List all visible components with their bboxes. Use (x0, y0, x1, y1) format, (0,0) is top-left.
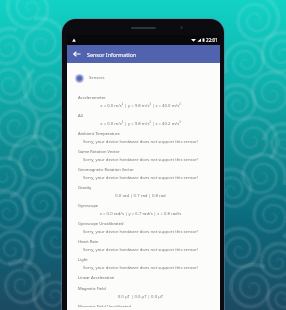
staticText: Game Rotation Vector (78, 149, 120, 155)
button[interactable]: Game Rotation Vector (67, 147, 220, 165)
staticText: Sorry, your device hardware does not sup… (78, 228, 203, 234)
staticText: x = 0.0 m/s² | y = 9.8 m/s² | z = 40.2 m… (78, 120, 203, 126)
staticText: Sorry, your device hardware does not sup… (78, 174, 203, 180)
staticText: x = 0.0 rad/s | y = 6.7 rad/s | z = 0.8 … (78, 210, 203, 216)
staticText: Linear Acceleration (78, 275, 115, 281)
staticText: Sensors (89, 75, 105, 81)
staticText: 0.0 rad | 0.7 rad | 0.8 rad (78, 192, 203, 198)
staticText: Sorry, your device hardware does not sup… (78, 138, 203, 144)
staticText: Heart Rate (78, 239, 99, 245)
staticText: Ambient Temperature (78, 131, 120, 137)
button[interactable]: Linear Acceleration (67, 273, 220, 284)
staticText: Gravity (78, 185, 92, 191)
staticText: Geomagnetic Rotation Vector (78, 167, 134, 173)
button[interactable]: Gravity (67, 183, 220, 201)
staticText: Gyroscope Uncalibrated (78, 221, 124, 227)
staticText: Gyroscope (78, 203, 99, 209)
button[interactable]: Sensors (75, 63, 220, 93)
staticText: Sorry, your device hardware does not sup… (78, 156, 203, 162)
button[interactable]: Light (67, 255, 220, 273)
button[interactable]: Gyroscope Uncalibrated (67, 219, 220, 237)
staticText: Sorry, your device hardware does not sup… (78, 264, 203, 270)
staticText: 0.0 µT | 0.0 µT | 0.0 µT (78, 293, 203, 299)
staticText: x = 0.0 m/s² | y = 9.8 m/s² | z = 40.0 m… (78, 102, 203, 108)
button[interactable]: A4 (67, 111, 220, 129)
button[interactable]: Gyroscope (67, 201, 220, 219)
staticText: 22:01 (206, 37, 218, 43)
button[interactable]: Accelerometer (67, 93, 220, 111)
button[interactable]: Geomagnetic Rotation Vector (67, 165, 220, 183)
button[interactable]: Magnetic Field (67, 284, 220, 302)
button[interactable]: Ambient Temperature (67, 129, 220, 147)
staticText: Sorry, your device hardware does not sup… (78, 246, 203, 252)
button[interactable]: Heart Rate (67, 237, 220, 255)
staticText: Sensor Information (87, 51, 137, 58)
staticText: Magnetic Field (78, 286, 106, 292)
staticText: Accelerometer (78, 95, 106, 101)
staticText: Light (78, 257, 88, 263)
staticText: Magnetic Field Uncalibrated (78, 304, 132, 307)
button[interactable]: Back (67, 45, 87, 63)
staticText: A4 (78, 113, 83, 119)
button[interactable]: Magnetic Field Uncalibrated (67, 302, 220, 310)
